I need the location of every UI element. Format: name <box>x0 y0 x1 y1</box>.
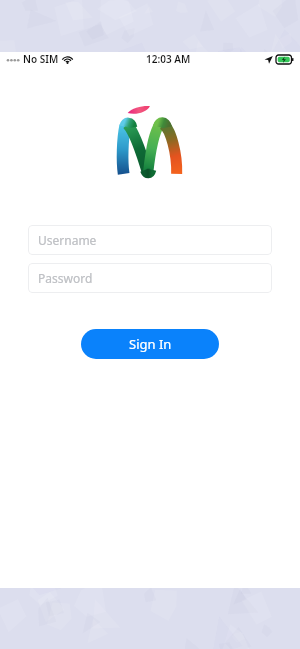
button[interactable]: Username <box>28 225 272 255</box>
staticText: No SIM <box>23 52 59 66</box>
staticText: Username <box>38 232 97 248</box>
staticText: Password <box>38 270 93 286</box>
staticText: Sign In <box>129 335 172 353</box>
button[interactable]: Password <box>28 263 272 293</box>
staticText: 12:03 AM <box>146 52 191 66</box>
button[interactable]: Sign In <box>81 329 219 359</box>
